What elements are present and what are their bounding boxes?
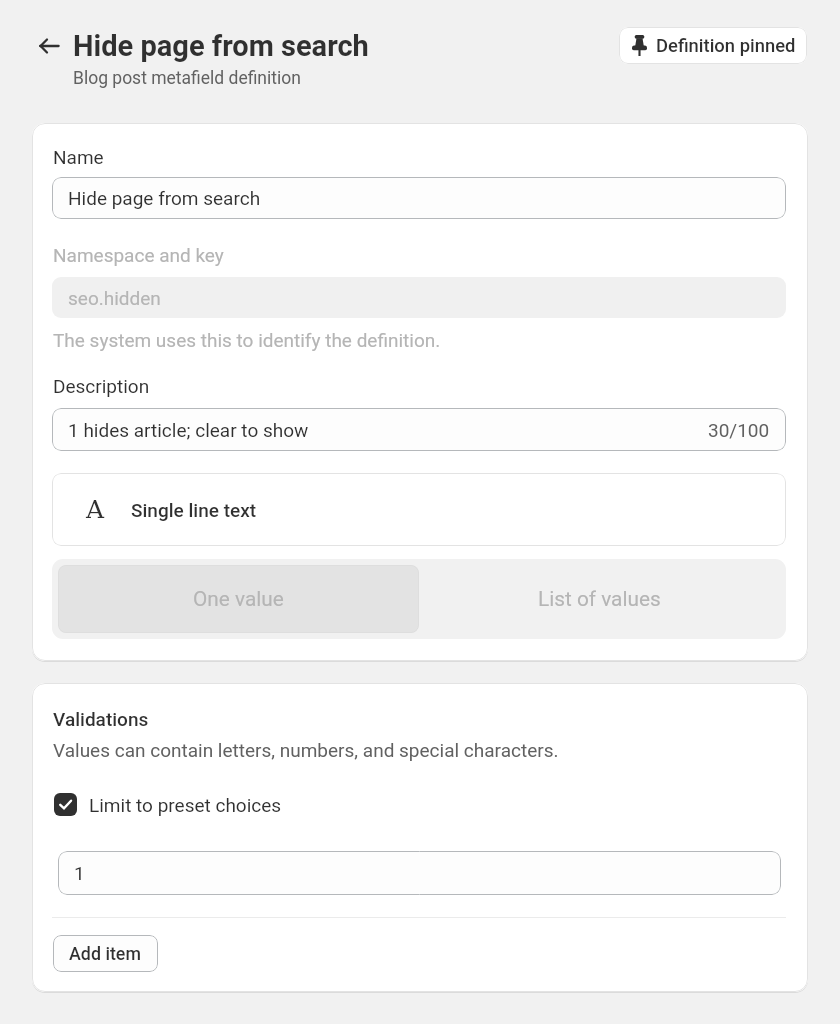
button[interactable]: One value — [58, 565, 419, 633]
button[interactable]: List of values — [419, 565, 780, 633]
button[interactable]: Definition pinned — [619, 27, 807, 64]
staticText: Namespace and key — [53, 244, 224, 266]
staticText: Add item — [69, 943, 141, 964]
button[interactable]: Back — [30, 27, 68, 65]
staticText: A — [86, 495, 105, 524]
staticText: Blog post metafield definition — [73, 68, 301, 89]
staticText: Single line text — [131, 499, 257, 521]
staticText: Limit to preset choices — [89, 794, 282, 816]
button[interactable]: Hide page from search — [52, 177, 786, 219]
staticText: Validations — [53, 708, 149, 730]
staticText: List of values — [538, 587, 661, 611]
button[interactable]: Limit to preset choices — [54, 793, 282, 816]
staticText: One value — [193, 587, 284, 611]
staticText: seo.hidden — [68, 287, 161, 309]
button[interactable]: 1 hides article; clear to show — [52, 408, 786, 451]
staticText: Values can contain letters, numbers, and… — [53, 739, 559, 761]
button[interactable]: 1 — [58, 851, 781, 895]
staticText: Hide page from search — [68, 187, 261, 209]
button[interactable]: Add item — [53, 935, 158, 972]
staticText: 1 hides article; clear to show — [68, 419, 309, 441]
staticText: 1 — [74, 862, 85, 884]
staticText: Hide page from search — [73, 29, 369, 63]
staticText: Description — [53, 375, 150, 397]
staticText: Definition pinned — [656, 35, 796, 57]
button[interactable]: A — [52, 473, 786, 546]
staticText: Name — [53, 146, 104, 168]
staticText: The system uses this to identify the def… — [53, 329, 441, 351]
staticText: 30/100 — [708, 419, 770, 441]
